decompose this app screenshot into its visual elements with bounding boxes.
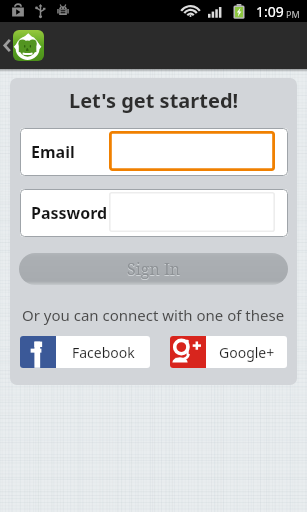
button[interactable]: App icon xyxy=(13,30,44,61)
staticText: Sign In xyxy=(127,258,181,280)
staticText: Password xyxy=(31,202,108,224)
staticText: 1:09 xyxy=(256,2,284,21)
button[interactable]: Back xyxy=(0,22,13,69)
staticText: Let's get started! xyxy=(69,87,239,114)
button[interactable]: Sign In xyxy=(19,253,288,285)
button[interactable]: Email xyxy=(20,128,288,176)
button[interactable]: Google+ xyxy=(170,336,287,368)
staticText: Google+ xyxy=(219,343,275,362)
staticText: Or you can connect with one of these xyxy=(22,305,285,325)
staticText: Facebook xyxy=(72,343,135,362)
staticText: PM xyxy=(286,8,300,20)
staticText: Email xyxy=(31,141,75,163)
staticText: Sign In xyxy=(127,259,181,281)
button[interactable]: Facebook xyxy=(20,336,150,368)
button[interactable]: Password xyxy=(20,189,288,237)
